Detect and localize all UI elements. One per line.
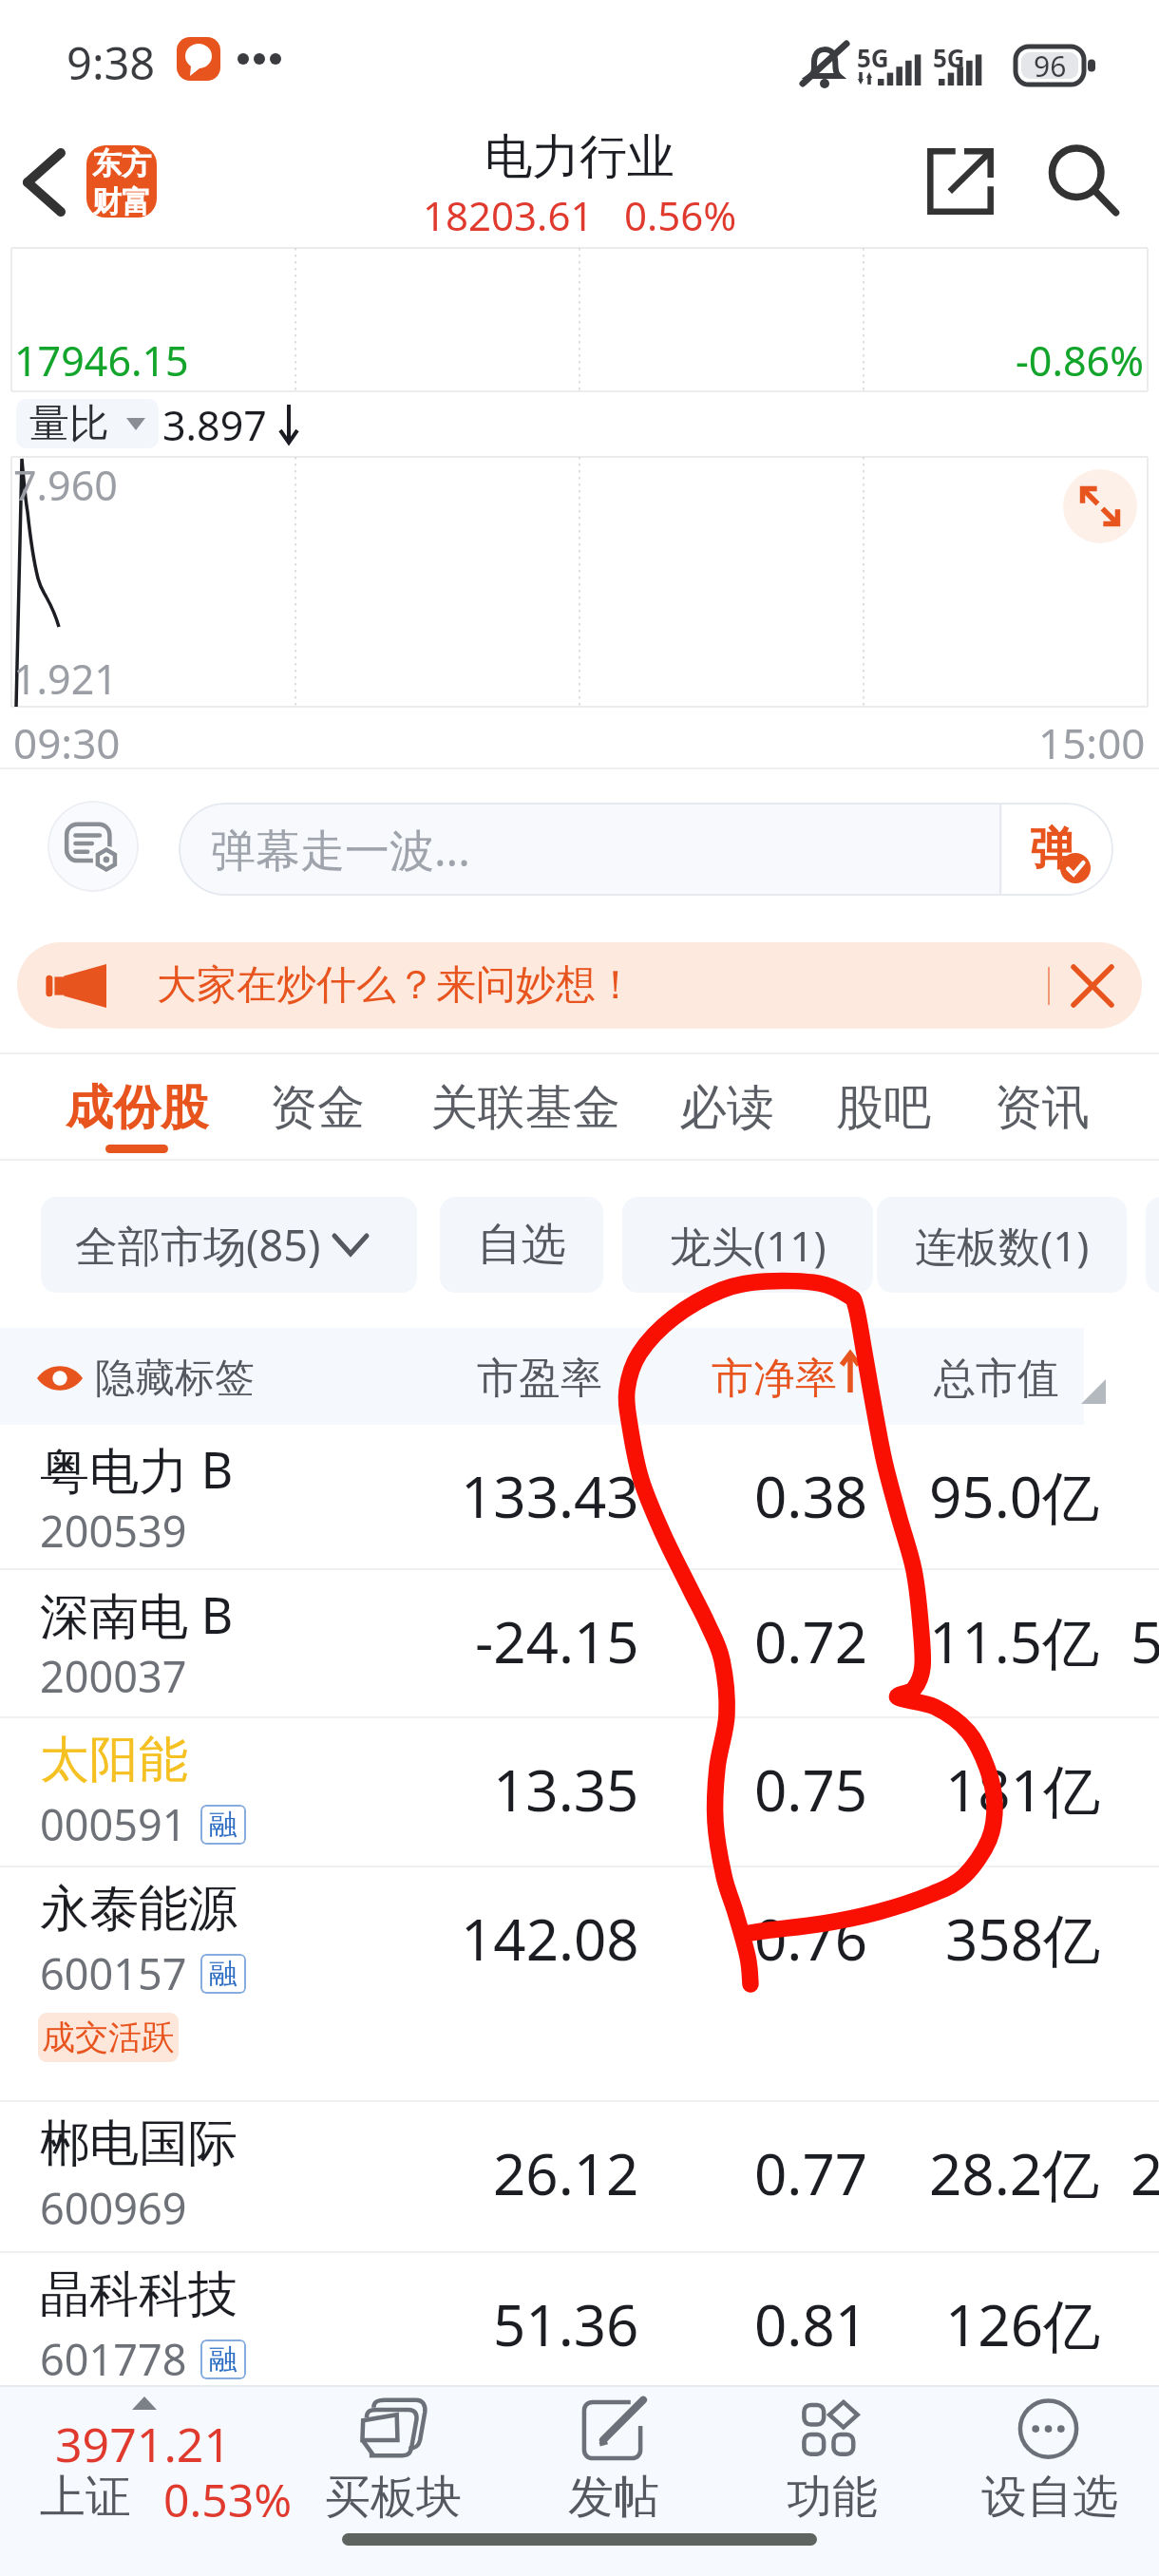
- staticText: 市盈率: [477, 1353, 638, 1404]
- button[interactable]: 晶科科技: [0, 2253, 1159, 2387]
- staticText: 0.72: [754, 1602, 868, 1680]
- button[interactable]: 连板数(1): [877, 1197, 1127, 1293]
- staticText: 成份股: [66, 1078, 208, 1138]
- button[interactable]: 全部市场(85): [41, 1197, 417, 1293]
- staticText: 市净率: [712, 1353, 873, 1404]
- staticText: 600969: [40, 2179, 187, 2237]
- staticText: 133.43: [461, 1457, 639, 1535]
- staticText: 0.38: [754, 1457, 868, 1535]
- button[interactable]: 深南电 B: [0, 1570, 1159, 1718]
- button[interactable]: 设自选: [945, 2387, 1154, 2529]
- button[interactable]: 3971.21: [0, 2387, 304, 2539]
- staticText: 000591: [40, 1795, 187, 1853]
- button[interactable]: 发帖: [509, 2387, 718, 2529]
- staticText: 财富: [92, 183, 151, 218]
- staticText: 28.2亿: [929, 2134, 1100, 2212]
- button[interactable]: 量比: [16, 399, 159, 448]
- staticText: 郴电国际: [40, 2112, 237, 2175]
- staticText: 3971.21: [55, 2412, 231, 2467]
- staticText: 95.0亿: [929, 1457, 1100, 1535]
- staticText: -24.15: [475, 1602, 639, 1680]
- staticText: 5: [1130, 1602, 1159, 1680]
- staticText: 200539: [40, 1502, 187, 1560]
- button[interactable]: 关联基金: [430, 1054, 620, 1159]
- staticText: 太阳能: [40, 1729, 188, 1791]
- button[interactable]: Close: [1068, 961, 1117, 1011]
- button[interactable]: Danmu settings: [47, 801, 139, 892]
- staticText: 0.76: [754, 1900, 868, 1978]
- staticText: 资讯: [995, 1078, 1090, 1138]
- button[interactable]: 太阳能: [0, 1718, 1159, 1867]
- staticText: 粤电力 B: [40, 1435, 234, 1503]
- staticText: 量比: [29, 399, 109, 448]
- button[interactable]: 资讯: [990, 1054, 1094, 1159]
- staticText: 181亿: [945, 1751, 1100, 1828]
- staticText: 0.75: [754, 1751, 868, 1828]
- button[interactable]: 永泰能源: [0, 1867, 1159, 2102]
- button[interactable]: 龙头(11): [622, 1197, 873, 1293]
- staticText: 5G: [857, 41, 889, 74]
- staticText: 大家在炒什么？来问妙想！: [157, 960, 636, 1011]
- staticText: 1.921: [13, 651, 118, 707]
- staticText: 11.5亿: [929, 1602, 1100, 1680]
- staticText: 弹幕走一波...: [211, 819, 470, 880]
- staticText: 买板块: [325, 2469, 462, 2526]
- button[interactable]: Back: [8, 140, 93, 225]
- staticText: 13.35: [493, 1751, 639, 1828]
- staticText: 龙头(11): [670, 1217, 826, 1274]
- staticText: 601778: [40, 2330, 187, 2388]
- staticText: 126亿: [945, 2285, 1100, 2363]
- staticText: 0.77: [754, 2134, 868, 2212]
- staticText: 融: [209, 1956, 237, 1992]
- staticText: 200037: [40, 1647, 187, 1705]
- staticText: 9:38: [66, 32, 156, 85]
- staticText: 358亿: [945, 1900, 1100, 1978]
- staticText: 股吧: [836, 1078, 931, 1138]
- staticText: 深南电 B: [40, 1581, 234, 1648]
- staticText: 资金: [270, 1078, 365, 1138]
- button[interactable]: Share: [914, 135, 1007, 228]
- button[interactable]: 自选: [440, 1197, 603, 1293]
- staticText: -0.86%: [1016, 332, 1144, 388]
- staticText: 0.56%: [624, 188, 737, 234]
- staticText: 隐藏标签: [95, 1354, 342, 1403]
- staticText: 26.12: [493, 2134, 639, 2212]
- staticText: 15:00: [1038, 714, 1146, 764]
- staticText: 关联基金: [430, 1078, 620, 1138]
- staticText: 必读: [679, 1078, 774, 1138]
- staticText: 永泰能源: [40, 1878, 237, 1941]
- button[interactable]: 股吧: [831, 1054, 936, 1159]
- staticText: 5G: [933, 41, 965, 74]
- staticText: 弹: [1030, 821, 1075, 878]
- staticText: 18203.61: [423, 188, 594, 234]
- button[interactable]: 粤电力 B: [0, 1425, 1159, 1570]
- staticText: 融: [209, 1807, 237, 1843]
- staticText: 全部市场(85): [75, 1216, 321, 1274]
- staticText: 晶科科技: [40, 2263, 237, 2326]
- staticText: 电力行业: [484, 127, 674, 179]
- button[interactable]: East Money logo: [86, 145, 157, 218]
- staticText: 96: [1034, 47, 1067, 85]
- button[interactable]: Fullscreen chart: [1063, 469, 1137, 543]
- staticText: 融: [209, 2341, 237, 2377]
- button[interactable]: 资金: [265, 1054, 370, 1159]
- staticText: 3.897: [162, 397, 267, 450]
- staticText: 09:30: [13, 714, 203, 764]
- staticText: 设自选: [981, 2469, 1118, 2526]
- button[interactable]: 弹幕走一波...: [179, 803, 1113, 896]
- button[interactable]: 功能: [728, 2387, 937, 2529]
- button[interactable]: 买板块: [289, 2387, 498, 2529]
- button[interactable]: 大家在炒什么？来问妙想！: [17, 942, 1142, 1029]
- staticText: 成交活跃: [42, 2017, 175, 2058]
- staticText: 总市值: [934, 1353, 1095, 1404]
- staticText: 东方: [92, 145, 151, 182]
- staticText: 发帖: [568, 2469, 659, 2526]
- button[interactable]: Search: [1037, 135, 1130, 228]
- staticText: 7.960: [13, 457, 118, 513]
- staticText: 自选: [477, 1217, 566, 1273]
- staticText: 142.08: [461, 1900, 639, 1978]
- button[interactable]: 郴电国际: [0, 2102, 1159, 2253]
- button[interactable]: 必读: [674, 1054, 779, 1159]
- button[interactable]: 成份股: [66, 1054, 208, 1159]
- staticText: 51.36: [493, 2285, 639, 2363]
